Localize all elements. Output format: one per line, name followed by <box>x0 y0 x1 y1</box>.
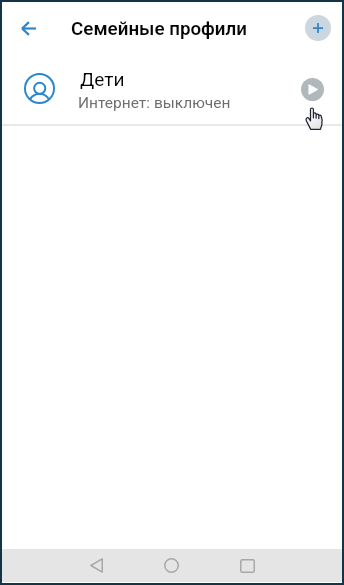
button[interactable]: Turn on internet <box>301 78 324 101</box>
button[interactable]: Back <box>76 549 116 582</box>
staticText: Интернет: выключен <box>78 94 231 112</box>
button[interactable]: Home <box>151 549 191 582</box>
button[interactable]: Дети <box>2 53 342 124</box>
button[interactable]: Recent apps <box>227 549 267 582</box>
staticText: Семейные профили <box>71 18 247 40</box>
button[interactable]: Add profile <box>305 15 331 41</box>
button[interactable]: Back <box>11 11 46 46</box>
staticText: Дети <box>80 68 125 90</box>
